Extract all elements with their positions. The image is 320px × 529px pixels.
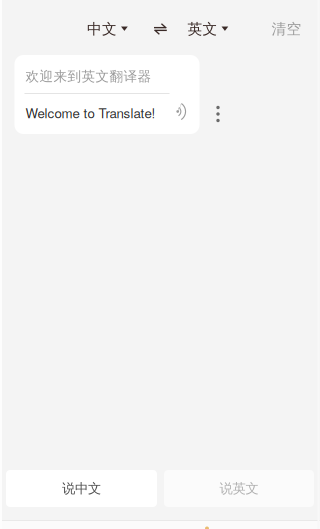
button[interactable]: 中文 (78, 12, 137, 46)
staticText: 说英文 (219, 480, 258, 497)
button[interactable]: 英文 (178, 12, 237, 46)
staticText: 英文 (187, 20, 217, 38)
button[interactable]: 说英文 (164, 470, 314, 507)
button[interactable]: 清空 (261, 12, 311, 46)
staticText: 说中文 (62, 480, 101, 497)
button[interactable]: 说中文 (6, 470, 157, 507)
staticText: 清空 (271, 20, 301, 38)
staticText: Welcome to Translate! (25, 103, 155, 122)
button[interactable]: Swap languages (145, 16, 175, 42)
staticText: 欢迎来到英文翻译器 (25, 68, 151, 85)
button[interactable]: More options (205, 98, 231, 130)
staticText: 中文 (87, 20, 117, 38)
